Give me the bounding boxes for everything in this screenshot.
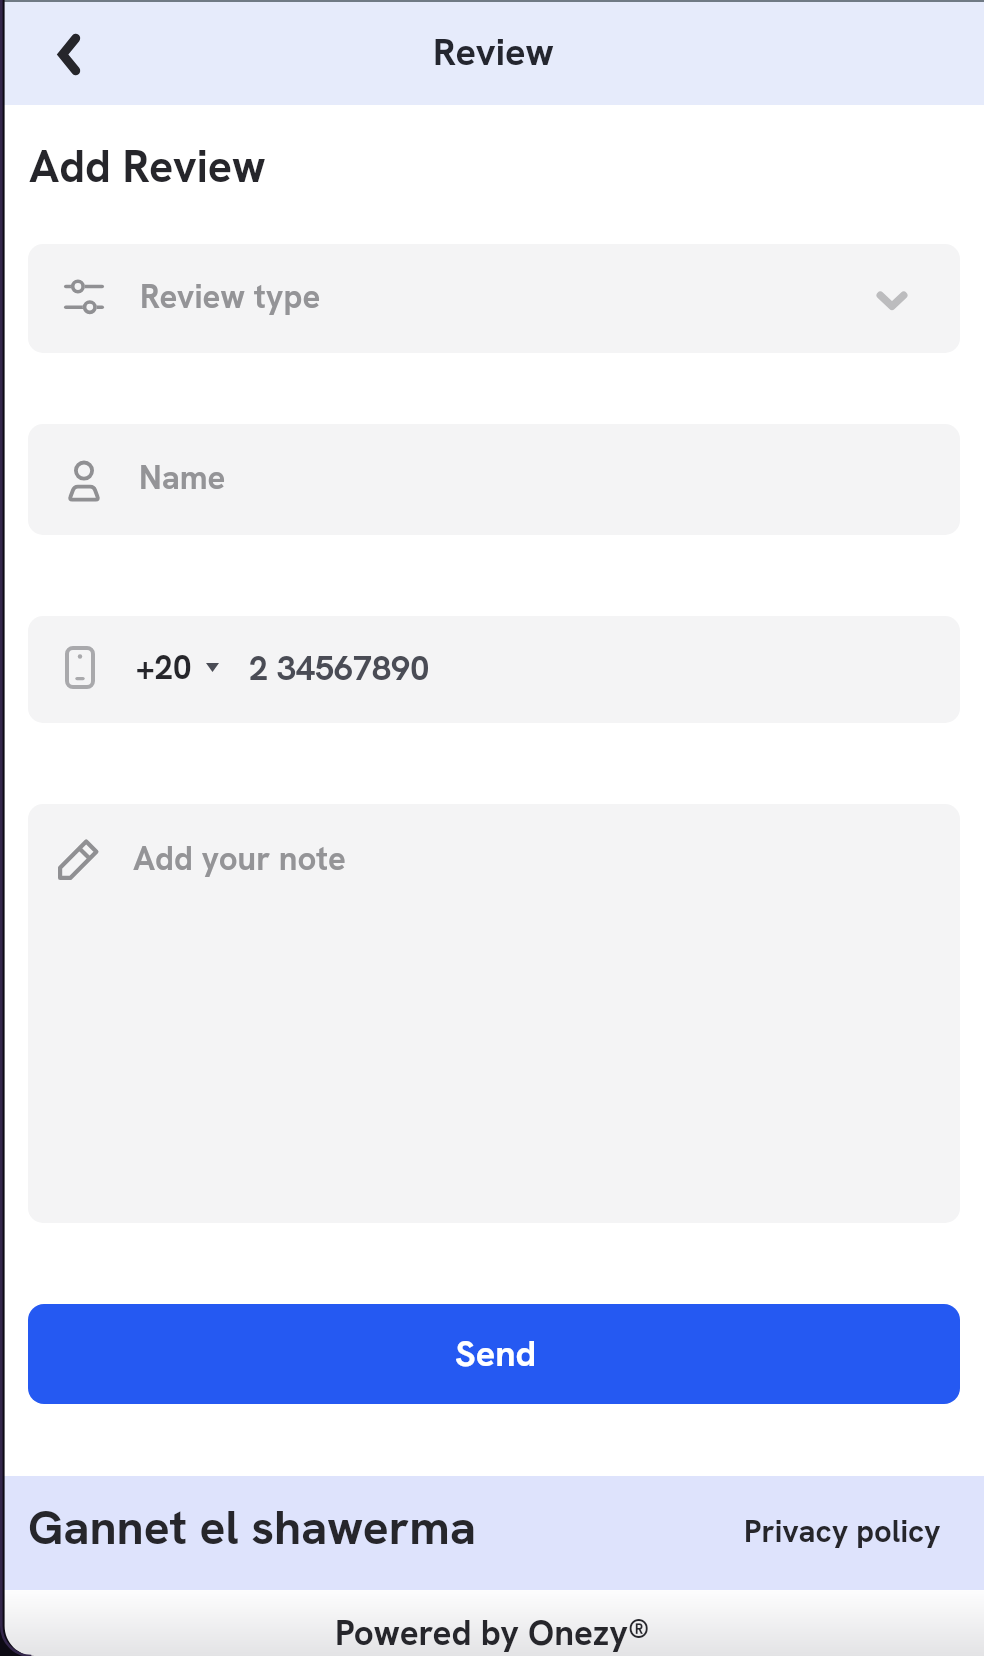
staticText: Send (455, 1330, 537, 1377)
staticText: Review (433, 27, 555, 77)
button[interactable]: Add your note (28, 804, 960, 1223)
button[interactable]: Back (44, 18, 114, 88)
staticText: Review type (140, 275, 321, 318)
staticText: 2 34567890 (249, 646, 430, 690)
staticText: Add your note (133, 837, 346, 880)
button[interactable]: Send (28, 1304, 960, 1404)
button[interactable]: Review type (28, 244, 960, 353)
staticText: +20 (136, 646, 192, 689)
staticText: Name (139, 456, 226, 499)
button[interactable]: +20 (28, 616, 960, 723)
staticText: Add Review (29, 137, 266, 196)
staticText: Powered by Onezy® (335, 1610, 650, 1656)
button[interactable]: Name (28, 424, 960, 535)
staticText: Gannet el shawerma (28, 1496, 476, 1559)
button[interactable]: Privacy policy (744, 1511, 941, 1551)
